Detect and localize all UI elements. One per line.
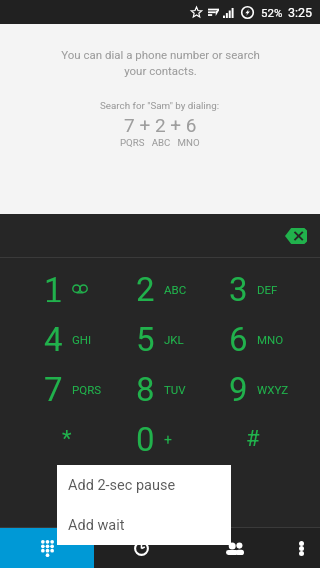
staticText: Add 2-sec pause xyxy=(68,477,176,494)
staticText: 1 xyxy=(44,270,63,309)
staticText: TUV xyxy=(164,383,186,396)
button[interactable]: 6 xyxy=(206,314,299,364)
staticText: ABC xyxy=(164,283,187,296)
staticText: 3 xyxy=(229,270,248,309)
staticText: 7 + 2 + 6 xyxy=(124,114,197,136)
staticText: 4 xyxy=(44,320,63,359)
staticText: WXYZ xyxy=(257,383,289,396)
button[interactable]: 8 xyxy=(113,364,206,414)
staticText: # xyxy=(246,426,260,452)
staticText: + xyxy=(164,432,172,448)
staticText: Add wait xyxy=(68,517,125,534)
button[interactable]: 9 xyxy=(206,364,299,414)
button[interactable]: Contacts xyxy=(188,528,282,568)
button[interactable]: More options xyxy=(282,528,320,568)
button[interactable]: 7 xyxy=(21,364,113,414)
button[interactable]: Add 2-sec pause xyxy=(57,465,231,505)
staticText: 52% xyxy=(261,6,283,19)
staticText: PQRS ABC MNO xyxy=(120,137,200,148)
staticText: 3:25 xyxy=(288,5,313,20)
staticText: JKL xyxy=(164,333,184,346)
staticText: 8 xyxy=(136,370,155,409)
staticText: GHI xyxy=(72,333,92,346)
button[interactable]: * xyxy=(21,414,113,464)
staticText: 7 xyxy=(44,370,63,409)
staticText: DEF xyxy=(257,283,278,296)
staticText: You can dial a phone number or search yo… xyxy=(61,48,260,78)
button[interactable]: 1 xyxy=(21,264,113,314)
button[interactable]: 0 xyxy=(113,414,206,464)
staticText: 0 xyxy=(136,420,155,459)
staticText: * xyxy=(62,426,72,452)
button[interactable]: 3 xyxy=(206,264,299,314)
staticText: 2 xyxy=(136,270,155,309)
staticText: Search for "Sam" by dialing: xyxy=(100,100,220,111)
button[interactable]: Recents xyxy=(94,528,188,568)
button[interactable]: # xyxy=(206,414,299,464)
button[interactable]: 2 xyxy=(113,264,206,314)
staticText: MNO xyxy=(257,333,284,346)
button[interactable]: Backspace xyxy=(278,218,314,254)
button[interactable]: 4 xyxy=(21,314,113,364)
button[interactable]: 5 xyxy=(113,314,206,364)
staticText: PQRS xyxy=(72,383,102,396)
staticText: 5 xyxy=(136,320,155,359)
staticText: 6 xyxy=(229,320,248,359)
staticText: 9 xyxy=(229,370,248,409)
button[interactable]: Dialpad xyxy=(0,528,94,568)
button[interactable]: Add wait xyxy=(57,505,231,545)
